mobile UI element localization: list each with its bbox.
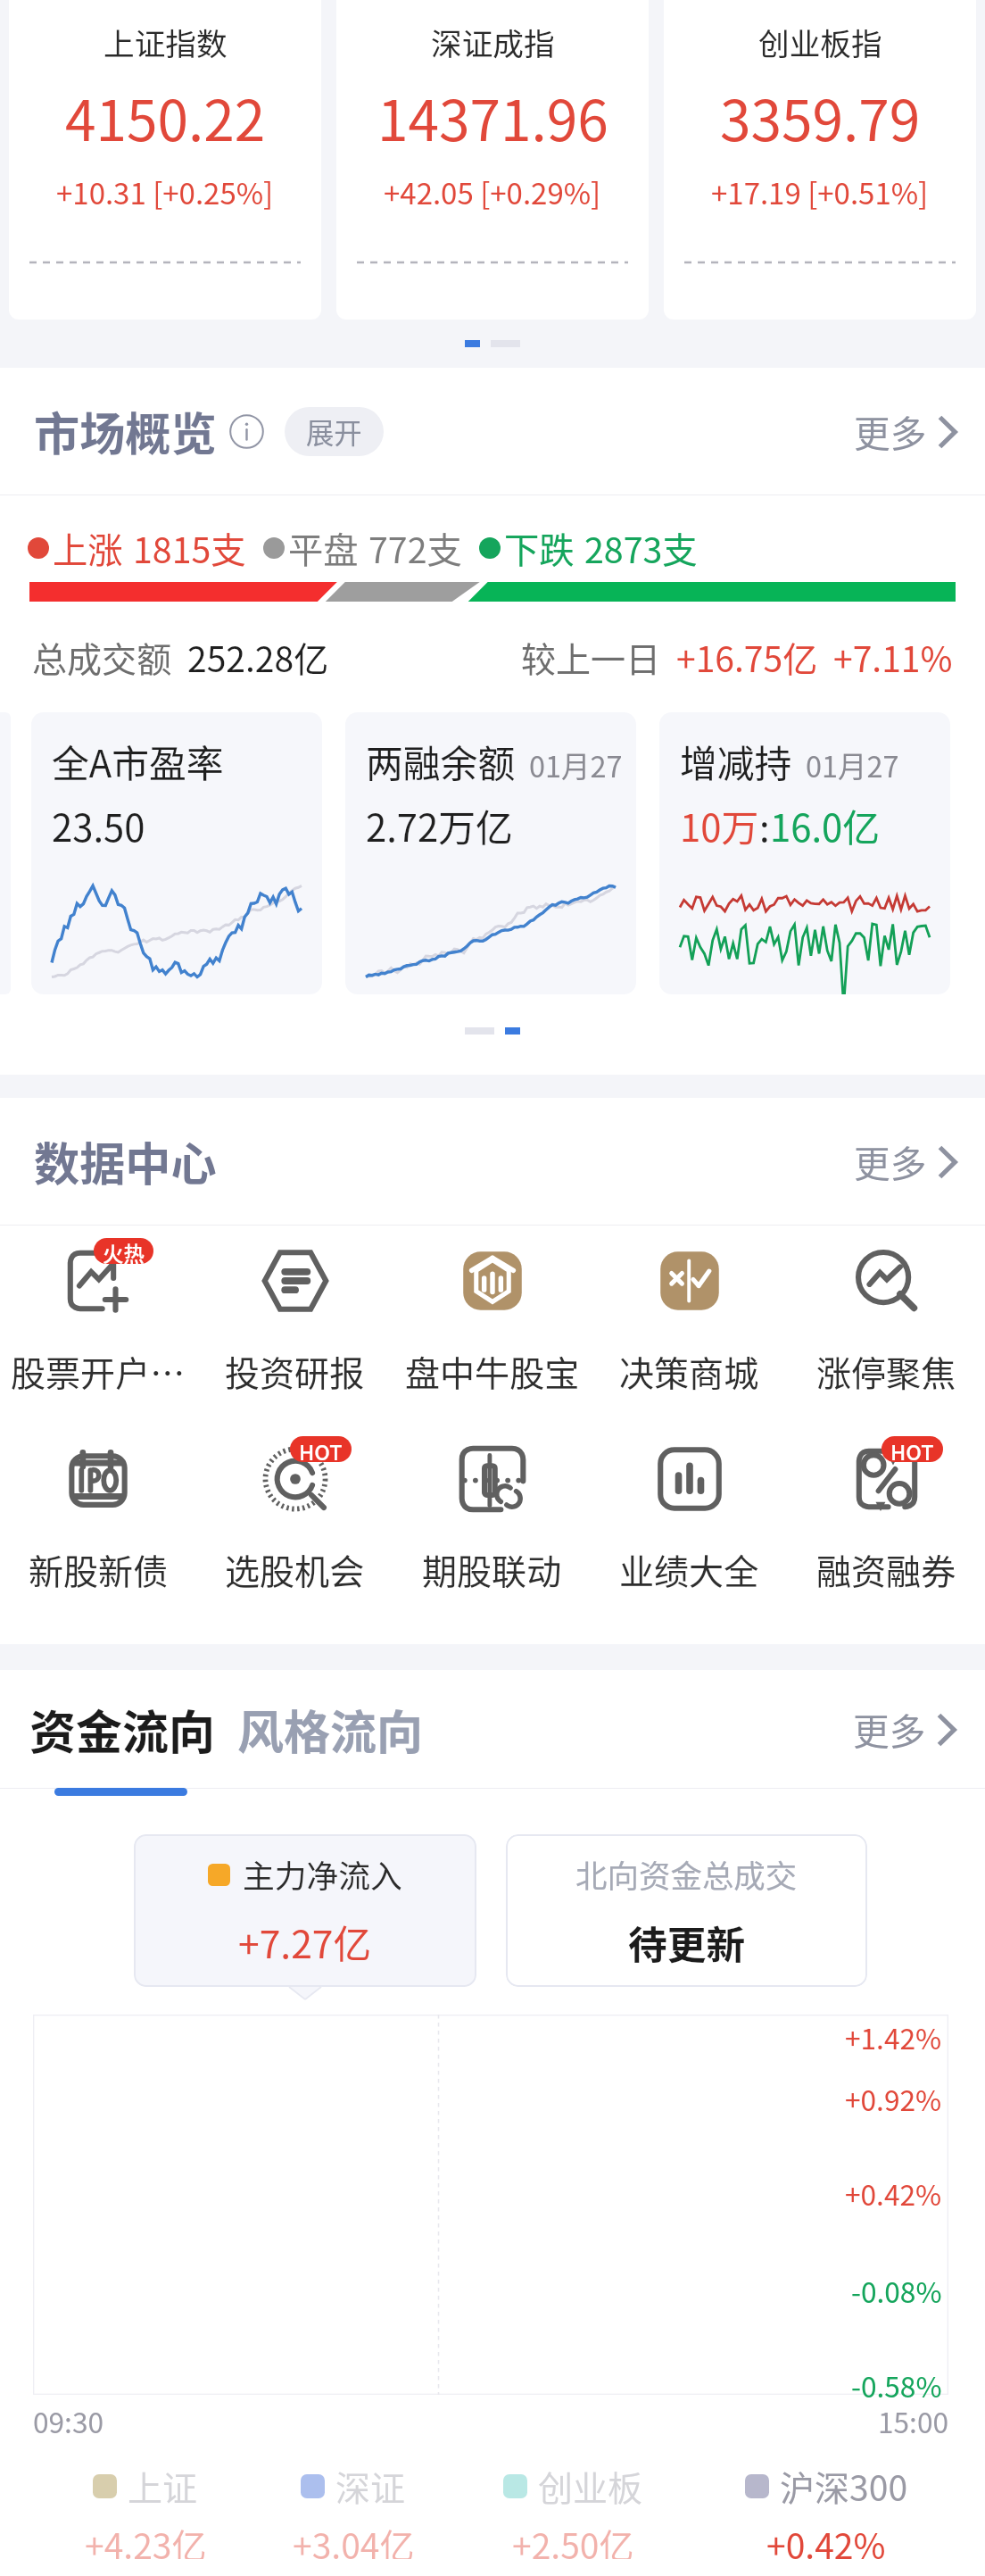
button[interactable]: 上证指数 xyxy=(9,0,321,320)
staticText: 主力净流入 xyxy=(243,1851,402,1898)
button[interactable]: 投资研报 xyxy=(196,1239,393,1397)
other: Info xyxy=(229,414,264,449)
staticText: 创业板 xyxy=(538,2461,643,2512)
staticText: +7.27亿 xyxy=(238,1915,372,1970)
staticText: +4.23亿 xyxy=(85,2519,207,2559)
staticText: 决策商城 xyxy=(619,1346,759,1397)
button[interactable]: 资金流向 xyxy=(29,1696,215,1763)
staticText: 涨停聚焦 xyxy=(816,1346,956,1397)
staticText: 1815支 xyxy=(133,522,246,573)
staticText: 772支 xyxy=(368,522,462,573)
staticText: 01月27 xyxy=(806,744,899,785)
staticText: 市场概览 xyxy=(34,398,217,464)
staticText: 15:00 xyxy=(878,2400,948,2441)
button[interactable]: 风格流向 xyxy=(237,1696,423,1763)
button[interactable]: 北向资金总成交 xyxy=(506,1834,867,1987)
staticText: 09:30 xyxy=(33,2400,103,2441)
button[interactable]: 上证 xyxy=(52,2461,239,2559)
button[interactable]: 业绩大全 xyxy=(591,1437,788,1595)
staticText: 融资融券 xyxy=(816,1544,956,1595)
staticText: -0.58% xyxy=(851,2364,942,2406)
button[interactable]: HOT xyxy=(196,1437,393,1595)
button[interactable]: 创业板 xyxy=(479,2461,666,2559)
staticText: 平盘 xyxy=(288,522,359,573)
staticText: 投资研报 xyxy=(225,1346,365,1397)
staticText: 两融余额 xyxy=(366,735,516,789)
staticText: HOT xyxy=(890,1436,934,1462)
staticText: 创业板指 xyxy=(758,20,882,64)
staticText: +7.11% xyxy=(833,632,953,683)
staticText: 新股新债 xyxy=(29,1544,169,1595)
staticText: 2.72万亿 xyxy=(366,799,513,853)
staticText: 全A市盈率 xyxy=(52,735,224,789)
staticText: 股票开户… xyxy=(11,1346,186,1397)
staticText: 下跌 xyxy=(504,522,575,573)
staticText: +0.42% xyxy=(766,2519,886,2559)
staticText: +0.42% xyxy=(845,2173,942,2214)
staticText: 16.0亿 xyxy=(770,799,881,853)
staticText: 盘中牛股宝 xyxy=(405,1346,580,1397)
button[interactable]: HOT xyxy=(788,1437,985,1595)
button[interactable]: 火热 xyxy=(0,1239,196,1397)
button[interactable]: 决策商城 xyxy=(591,1239,788,1397)
button[interactable]: 更多 xyxy=(853,1703,956,1756)
staticText: 14371.96 xyxy=(377,77,608,157)
button[interactable]: 更多 xyxy=(854,1135,956,1188)
staticText: 01月27 xyxy=(529,744,621,785)
staticText: 选股机会 xyxy=(225,1544,365,1595)
button[interactable]: 新股新债 xyxy=(0,1437,196,1595)
staticText: +42.05 [+0.29%] xyxy=(384,170,601,213)
staticText: +10.31 [+0.25%] xyxy=(56,170,274,213)
staticText: +2.50亿 xyxy=(512,2519,634,2559)
staticText: 10万 xyxy=(680,799,759,853)
button[interactable]: 更多 xyxy=(854,405,956,458)
staticText: 深证 xyxy=(335,2461,406,2512)
button[interactable]: 创业板指 xyxy=(664,0,976,320)
button[interactable]: 盘中牛股宝 xyxy=(393,1239,591,1397)
staticText: 2873支 xyxy=(584,522,698,573)
staticText: 更多 xyxy=(853,1703,926,1756)
button[interactable]: 深证成指 xyxy=(336,0,649,320)
staticText: 更多 xyxy=(854,1135,927,1188)
staticText: 上涨 xyxy=(53,522,123,573)
staticText: 展开 xyxy=(306,411,362,452)
staticText: 增减持 xyxy=(680,735,792,789)
staticText: 期股联动 xyxy=(422,1544,562,1595)
staticText: 业绩大全 xyxy=(619,1544,759,1595)
staticText: 23.50 xyxy=(52,799,145,853)
staticText: 252.28亿 xyxy=(187,632,329,683)
staticText: HOT xyxy=(299,1436,343,1462)
button[interactable]: 深证 xyxy=(260,2461,447,2559)
button[interactable]: 全A市盈率 xyxy=(31,712,322,994)
staticText: 更多 xyxy=(854,405,927,458)
staticText: +3.04亿 xyxy=(293,2519,415,2559)
staticText: 4150.22 xyxy=(65,77,266,157)
staticText: 上证指数 xyxy=(103,20,228,64)
button[interactable]: 主力净流入 xyxy=(134,1834,476,1987)
staticText: +16.75亿 xyxy=(676,632,818,683)
staticText: 待更新 xyxy=(628,1914,746,1970)
button[interactable]: 两融余额 xyxy=(345,712,636,994)
staticText: 数据中心 xyxy=(34,1128,217,1194)
staticText: 上证 xyxy=(128,2461,198,2512)
button[interactable]: 涨停聚焦 xyxy=(788,1239,985,1397)
staticText: : xyxy=(759,799,770,853)
staticText: 深证成指 xyxy=(431,20,555,64)
button[interactable]: 增减持 xyxy=(659,712,950,994)
staticText: +17.19 [+0.51%] xyxy=(711,170,929,213)
staticText: +1.42% xyxy=(845,2016,942,2057)
staticText: +0.92% xyxy=(845,2078,942,2119)
staticText: 较上一日 xyxy=(521,632,661,683)
button[interactable]: 沪深300 xyxy=(733,2461,920,2559)
button[interactable]: 期股联动 xyxy=(393,1437,591,1595)
button[interactable]: 展开 xyxy=(285,407,384,456)
staticText: 总成交额 xyxy=(32,632,172,683)
staticText: 火热 xyxy=(103,1238,145,1264)
staticText: -0.08% xyxy=(851,2270,942,2311)
staticText: 沪深300 xyxy=(780,2461,908,2512)
staticText: 北向资金总成交 xyxy=(575,1851,798,1897)
staticText: 3359.79 xyxy=(720,77,921,157)
